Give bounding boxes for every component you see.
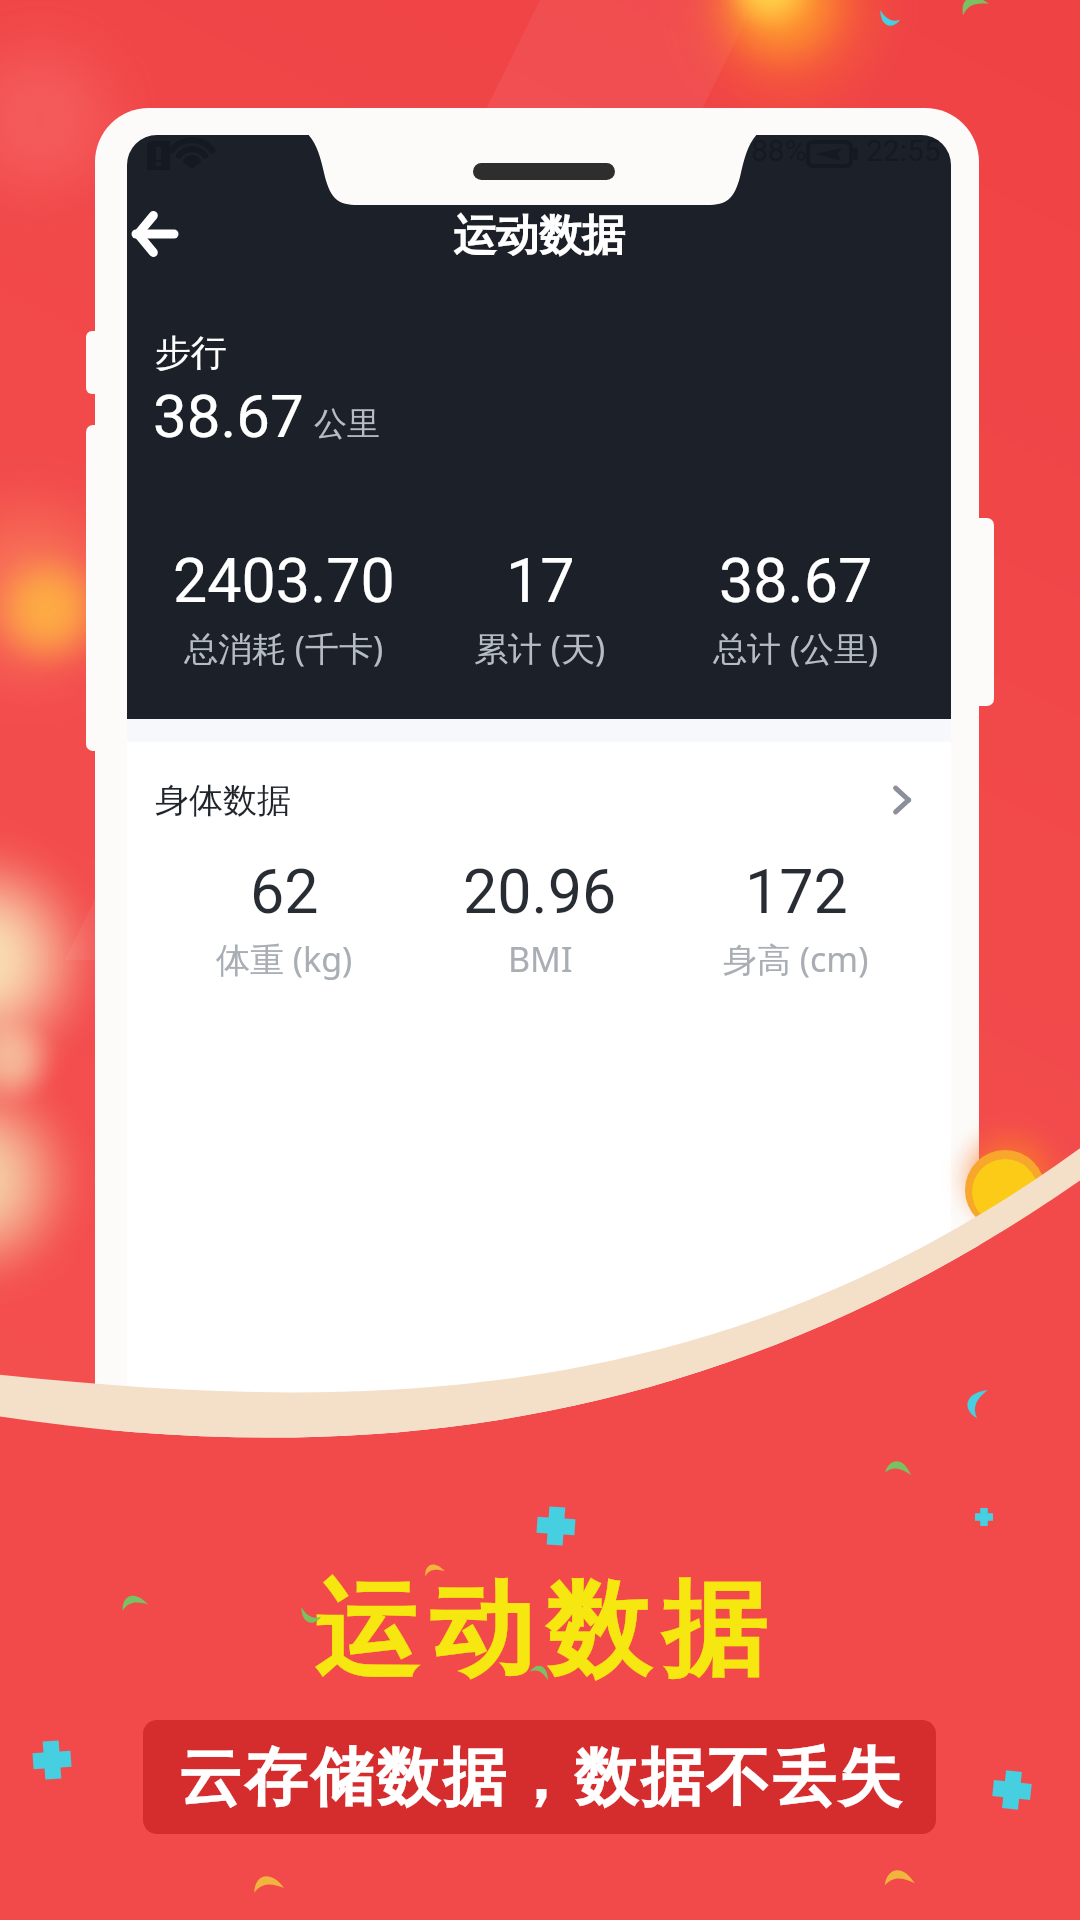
staticText: 身高 (cm) [723, 936, 869, 982]
button[interactable]: 身体数据 [127, 757, 951, 843]
staticText: 88% [751, 135, 807, 168]
staticText: BMI [508, 936, 573, 982]
staticText: 步行 [155, 330, 227, 375]
staticText: 总消耗 (千卡) [184, 625, 384, 671]
staticText: 38.67 [719, 545, 873, 616]
staticText: 17 [506, 545, 575, 616]
staticText: 身体数据 [155, 779, 291, 822]
staticText: 运动数据 [308, 1565, 772, 1685]
staticText: 云存储数据，数据不丢失 [177, 1738, 903, 1817]
button[interactable]: 云存储数据，数据不丢失 [143, 1720, 936, 1834]
staticText: 2403.70 [173, 545, 395, 616]
button[interactable]: Back [127, 190, 199, 278]
staticText: 62 [250, 856, 319, 927]
staticText: 38.67 [153, 381, 304, 451]
staticText: 172 [745, 856, 848, 927]
staticText: 20.96 [463, 856, 617, 927]
staticText: 公里 [314, 403, 380, 445]
staticText: 累计 (天) [474, 625, 606, 671]
staticText: 体重 (kg) [216, 936, 353, 982]
staticText: 运动数据 [453, 209, 625, 263]
staticText: 总计 (公里) [713, 625, 879, 671]
staticText: 22:55 [866, 135, 941, 168]
